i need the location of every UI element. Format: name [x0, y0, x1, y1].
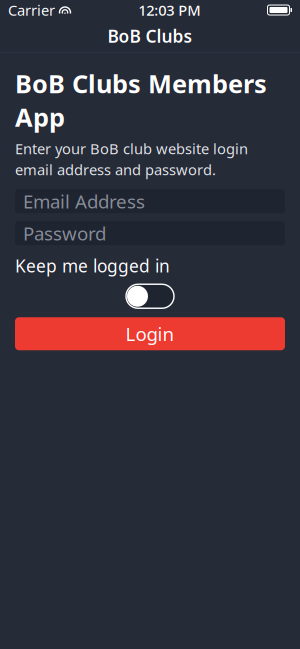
staticText: 12:03 PM — [138, 0, 200, 20]
staticText: Carrier — [8, 0, 55, 20]
button[interactable]: Email Address — [15, 189, 285, 213]
staticText: Password — [23, 221, 106, 246]
staticText: Email Address — [23, 189, 145, 214]
staticText: Login — [125, 321, 174, 346]
staticText: Enter your BoB club website login email … — [15, 139, 248, 179]
button[interactable]: Keep me logged in — [126, 284, 174, 308]
staticText: BoB Clubs Members App — [15, 66, 267, 134]
staticText: BoB Clubs — [107, 24, 192, 47]
button[interactable]: Login — [15, 317, 285, 350]
staticText: Keep me logged in — [15, 254, 170, 277]
button[interactable]: Password — [15, 221, 285, 245]
